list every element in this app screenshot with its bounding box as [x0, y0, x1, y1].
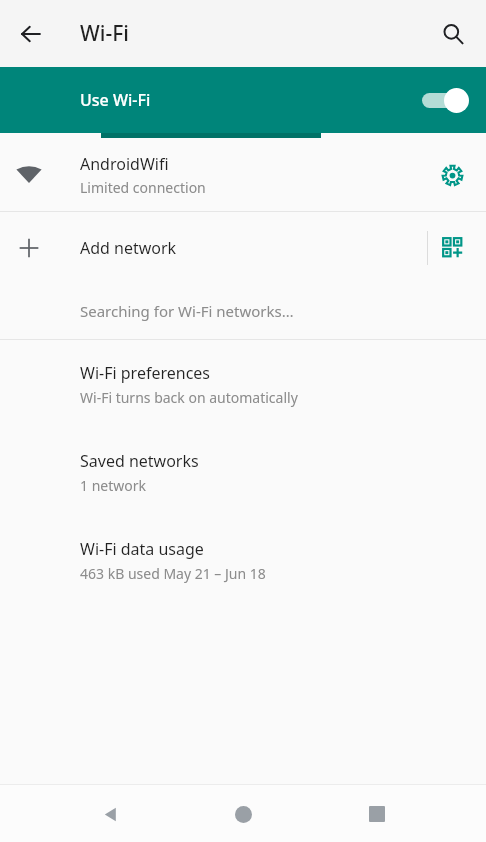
- button[interactable]: Saved networks: [0, 428, 486, 516]
- staticText: Add network: [80, 237, 177, 259]
- staticText: 1 network: [80, 476, 146, 495]
- staticText: Searching for Wi-Fi networks…: [80, 301, 294, 321]
- button[interactable]: Search: [429, 10, 477, 58]
- button[interactable]: Wi-Fi data usage: [0, 516, 486, 604]
- staticText: Wi-Fi: [80, 19, 129, 48]
- staticText: Use Wi-Fi: [80, 89, 151, 111]
- button[interactable]: Wi-Fi preferences: [0, 340, 486, 428]
- staticText: Saved networks: [80, 450, 199, 472]
- button[interactable]: Home: [219, 790, 267, 838]
- button[interactable]: Navigate up: [7, 10, 55, 58]
- staticText: AndroidWifi: [80, 153, 169, 175]
- button[interactable]: Add network: [0, 212, 486, 283]
- staticText: Limited connection: [80, 178, 206, 197]
- staticText: Wi-Fi data usage: [80, 538, 204, 560]
- button[interactable]: Use Wi-Fi: [0, 67, 486, 133]
- staticText: Wi-Fi preferences: [80, 362, 211, 384]
- staticText: Wi-Fi turns back on automatically: [80, 388, 298, 407]
- button[interactable]: Back: [86, 790, 134, 838]
- button[interactable]: Scan QR code: [431, 226, 475, 270]
- button[interactable]: Recent apps: [353, 790, 401, 838]
- button[interactable]: Network details: [430, 153, 474, 197]
- button[interactable]: AndroidWifi: [0, 138, 486, 211]
- staticText: 463 kB used May 21 – Jun 18: [80, 564, 266, 583]
